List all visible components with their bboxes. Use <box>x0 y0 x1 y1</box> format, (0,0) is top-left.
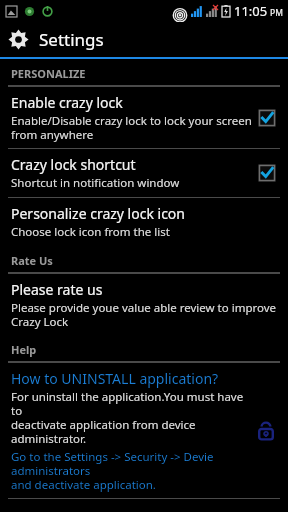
staticText: Go to the Settings -> Security -> Devie … <box>11 449 250 492</box>
staticText: Enable crazy lock <box>11 93 123 112</box>
staticText: Choose lock icon from the list <box>11 224 170 240</box>
staticText: 11:05 <box>234 2 268 20</box>
button[interactable]: Please rate us <box>0 274 288 335</box>
staticText: Settings <box>39 28 104 51</box>
staticText: Help <box>11 342 37 357</box>
button[interactable]: How to UNINSTALL application? <box>0 363 288 499</box>
button[interactable]: Enable crazy lock <box>0 87 288 149</box>
staticText: Enable/Disable crazy lock to lock your s… <box>11 113 252 142</box>
staticText: Shortcut in notification window <box>11 175 180 191</box>
button[interactable]: Crazy lock shortcut <box>0 149 288 198</box>
staticText: PERSONALIZE <box>11 66 86 81</box>
button[interactable]: Settings <box>8 28 104 51</box>
staticText: Please rate us <box>11 280 103 299</box>
staticText: How to UNINSTALL application? <box>11 369 219 388</box>
button[interactable]: Personalize crazy lock icon <box>0 198 288 246</box>
staticText: Personalize crazy lock icon <box>11 204 185 223</box>
staticText: For uninstall the application.You must h… <box>11 389 250 446</box>
staticText: Please provide youe value able review to… <box>11 300 277 329</box>
other: Lock <box>256 421 276 441</box>
staticText: Rate Us <box>11 253 53 268</box>
staticText: PM <box>270 7 283 19</box>
staticText: Crazy lock shortcut <box>11 155 136 174</box>
